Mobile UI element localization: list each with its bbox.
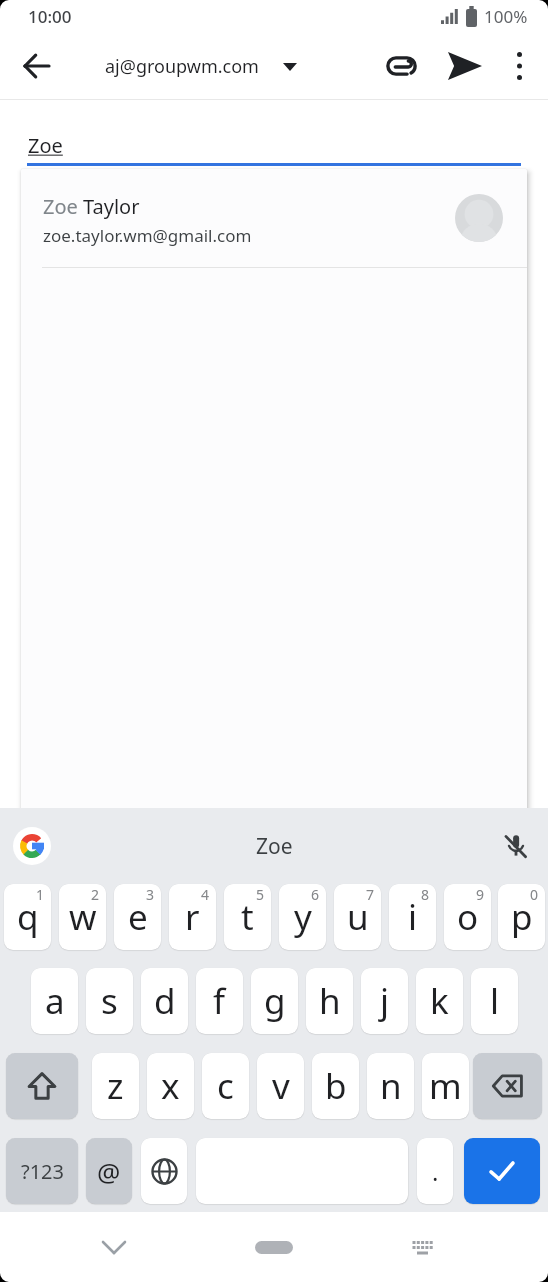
button[interactable]: . (417, 1138, 453, 1204)
staticText: 6 (311, 885, 320, 904)
staticText: 9 (476, 885, 485, 904)
button[interactable]: o (444, 884, 491, 950)
button[interactable]: y (279, 884, 326, 950)
button[interactable] (255, 1241, 293, 1254)
button[interactable]: z (92, 1053, 139, 1119)
staticText: aj@groupwm.com (105, 54, 259, 79)
staticText: i (408, 893, 418, 941)
button[interactable]: f (196, 968, 243, 1034)
staticText: t (241, 893, 254, 941)
staticText: d (154, 977, 176, 1025)
button[interactable]: x (147, 1053, 194, 1119)
staticText: 100% (484, 5, 528, 28)
button[interactable]: e (114, 884, 161, 950)
button[interactable]: aj@groupwm.com (105, 54, 297, 79)
staticText: p (511, 893, 533, 941)
staticText: z (107, 1062, 124, 1110)
staticText: zoe.taylor.wm@gmail.com (43, 224, 252, 247)
button[interactable]: g (251, 968, 298, 1034)
button[interactable]: c (202, 1053, 249, 1119)
staticText: 1 (36, 885, 45, 904)
staticText: j (380, 977, 390, 1025)
button[interactable]: s (86, 968, 133, 1034)
button[interactable]: p (498, 884, 545, 950)
button[interactable] (499, 46, 539, 86)
button[interactable]: l (471, 968, 518, 1034)
button[interactable]: ?123 (6, 1138, 78, 1204)
staticText: k (430, 977, 449, 1025)
button[interactable] (22, 51, 52, 81)
button[interactable] (377, 42, 425, 90)
button[interactable]: t (224, 884, 271, 950)
button[interactable] (96, 1229, 132, 1265)
staticText: 7 (366, 885, 375, 904)
staticText: n (380, 1062, 402, 1110)
button[interactable]: u (334, 884, 381, 950)
staticText: r (185, 893, 200, 941)
button[interactable]: Zoe Taylor (21, 169, 527, 267)
button[interactable]: @ (86, 1138, 132, 1204)
button[interactable]: i (389, 884, 436, 950)
button[interactable]: k (416, 968, 463, 1034)
staticText: u (347, 893, 369, 941)
button[interactable] (141, 1138, 187, 1204)
staticText: g (264, 977, 286, 1025)
button[interactable]: m (422, 1053, 469, 1119)
staticText: @ (97, 1154, 121, 1189)
staticText: 4 (201, 885, 210, 904)
staticText: h (319, 977, 341, 1025)
staticText: x (161, 1062, 180, 1110)
button[interactable]: j (361, 968, 408, 1034)
staticText: l (490, 977, 500, 1025)
staticText: 0 (530, 885, 539, 904)
staticText: s (101, 977, 118, 1025)
staticText: Zoe (28, 132, 63, 159)
button[interactable]: a (31, 968, 78, 1034)
staticText: c (217, 1062, 234, 1110)
staticText: w (69, 893, 97, 941)
button[interactable]: w (59, 884, 106, 950)
button[interactable]: Zoe (256, 832, 293, 861)
staticText: a (45, 977, 65, 1025)
staticText: 8 (421, 885, 430, 904)
button[interactable]: b (312, 1053, 359, 1119)
button[interactable] (441, 42, 489, 90)
staticText: o (457, 893, 479, 941)
button[interactable]: q (4, 884, 51, 950)
staticText: 5 (256, 885, 265, 904)
staticText: b (325, 1062, 347, 1110)
button[interactable] (6, 1053, 78, 1119)
button[interactable] (464, 1138, 540, 1204)
staticText: q (17, 893, 39, 941)
staticText: m (429, 1062, 462, 1110)
staticText: e (128, 893, 148, 941)
staticText: v (272, 1062, 290, 1110)
button[interactable] (496, 826, 536, 866)
staticText: Zoe Taylor (43, 193, 140, 220)
staticText: ?123 (21, 1158, 64, 1185)
button[interactable] (404, 1229, 440, 1265)
staticText: 3 (146, 885, 155, 904)
staticText: 10:00 (28, 5, 72, 28)
button[interactable]: v (257, 1053, 304, 1119)
button[interactable] (13, 827, 51, 865)
staticText: f (213, 977, 226, 1025)
button[interactable] (473, 1053, 542, 1119)
button[interactable]: n (367, 1053, 414, 1119)
staticText: y (294, 893, 312, 941)
staticText: . (432, 1155, 439, 1188)
button[interactable]: h (306, 968, 353, 1034)
button[interactable]: d (141, 968, 188, 1034)
staticText: 2 (91, 885, 100, 904)
button[interactable]: r (169, 884, 216, 950)
